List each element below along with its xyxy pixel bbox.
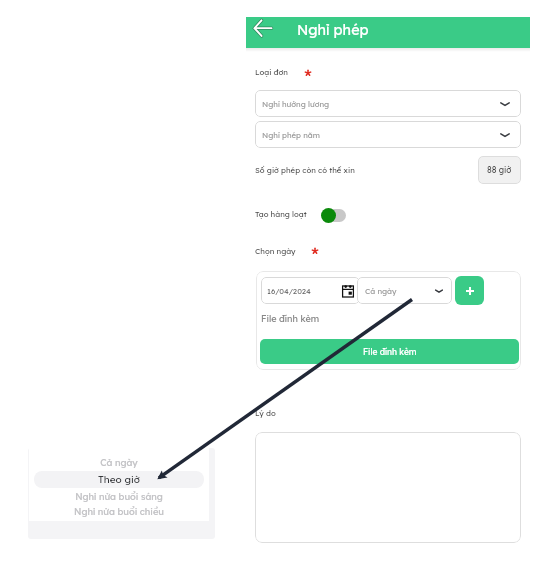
staticText: Nghỉ phép năm bbox=[262, 130, 320, 140]
staticText: Tạo hàng loạt bbox=[255, 209, 307, 219]
button[interactable]: Tạo hàng loạt bbox=[320, 206, 346, 224]
staticText: Theo giờ bbox=[98, 473, 140, 486]
button[interactable]: Theo giờ bbox=[34, 471, 204, 488]
staticText: Loại đơn bbox=[255, 67, 288, 77]
staticText: Nghỉ nửa buổi sáng bbox=[75, 491, 163, 503]
button[interactable]: Back bbox=[251, 17, 275, 41]
button[interactable] bbox=[255, 432, 521, 543]
staticText: Nghỉ hưởng lương bbox=[262, 99, 330, 109]
staticText: Nghỉ nửa buổi chiều bbox=[74, 506, 164, 518]
staticText: Cả ngày bbox=[100, 457, 138, 469]
button[interactable]: Nghỉ phép năm bbox=[255, 121, 521, 148]
button[interactable]: Thêm ngày bbox=[455, 276, 484, 305]
staticText: File đính kèm bbox=[261, 313, 320, 324]
button[interactable]: 88 giờ bbox=[478, 156, 521, 184]
button[interactable]: Nghỉ hưởng lương bbox=[255, 90, 521, 117]
button[interactable]: Cả ngày bbox=[34, 455, 204, 471]
staticText: Chọn ngày bbox=[255, 246, 296, 256]
staticText: 88 giờ bbox=[487, 165, 512, 175]
staticText: Cả ngày bbox=[365, 286, 397, 296]
button[interactable]: Cả ngày bbox=[357, 277, 452, 304]
staticText: File đính kèm bbox=[363, 347, 417, 357]
button[interactable]: Nghỉ nửa buổi sáng bbox=[34, 488, 204, 506]
staticText: Lý do bbox=[255, 408, 276, 418]
button[interactable]: 16/04/2024 bbox=[261, 277, 360, 304]
other: Chọn ngày bbox=[342, 285, 354, 297]
staticText: Số giờ phép còn có thể xin bbox=[255, 165, 355, 175]
button[interactable]: Nghỉ nửa buổi chiều bbox=[34, 506, 204, 518]
staticText: 16/04/2024 bbox=[267, 286, 311, 296]
button[interactable]: File đính kèm bbox=[260, 339, 519, 364]
staticText: Nghỉ phép bbox=[297, 21, 369, 39]
